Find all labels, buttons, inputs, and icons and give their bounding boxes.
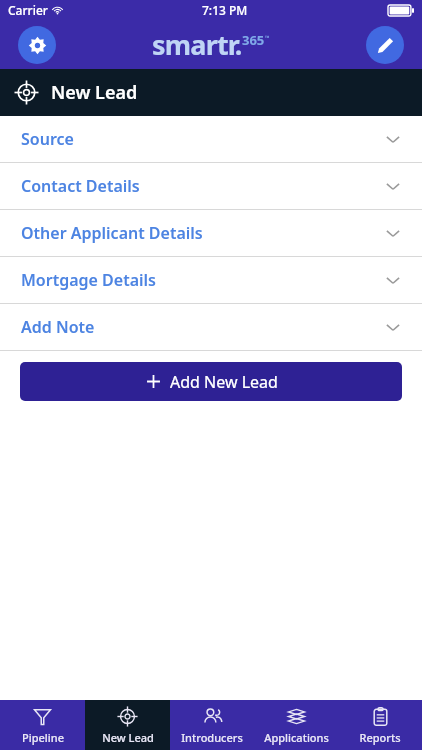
- staticText: Add Note: [21, 316, 95, 338]
- staticText: 365: [242, 31, 265, 49]
- staticText: Contact Details: [21, 175, 140, 197]
- button[interactable]: Source: [0, 116, 422, 162]
- staticText: smartr.: [152, 26, 242, 63]
- button[interactable]: Applications: [254, 700, 338, 750]
- button[interactable]: Reports: [338, 700, 422, 750]
- staticText: Pipeline: [22, 730, 64, 745]
- button[interactable]: New Lead: [85, 700, 170, 750]
- staticText: Reports: [359, 730, 401, 745]
- staticText: ™: [265, 34, 270, 42]
- staticText: 7:13 PM: [202, 2, 248, 18]
- button[interactable]: Other Applicant Details: [0, 210, 422, 256]
- button[interactable]: Contact Details: [0, 163, 422, 209]
- staticText: Applications: [264, 730, 329, 745]
- button[interactable]: Mortgage Details: [0, 257, 422, 303]
- staticText: Other Applicant Details: [21, 222, 203, 244]
- staticText: Mortgage Details: [21, 269, 156, 291]
- button[interactable]: Settings: [18, 26, 56, 64]
- staticText: Add New Lead: [170, 371, 278, 393]
- staticText: Carrier: [8, 2, 48, 18]
- button[interactable]: Add Note: [0, 304, 422, 350]
- button[interactable]: Add New Lead: [20, 362, 402, 401]
- staticText: Source: [21, 128, 74, 150]
- button[interactable]: Pipeline: [0, 700, 85, 750]
- button[interactable]: Edit: [366, 26, 404, 64]
- staticText: New Lead: [102, 730, 154, 745]
- button[interactable]: Introducers: [170, 700, 254, 750]
- staticText: Introducers: [181, 730, 243, 745]
- staticText: New Lead: [51, 80, 138, 105]
